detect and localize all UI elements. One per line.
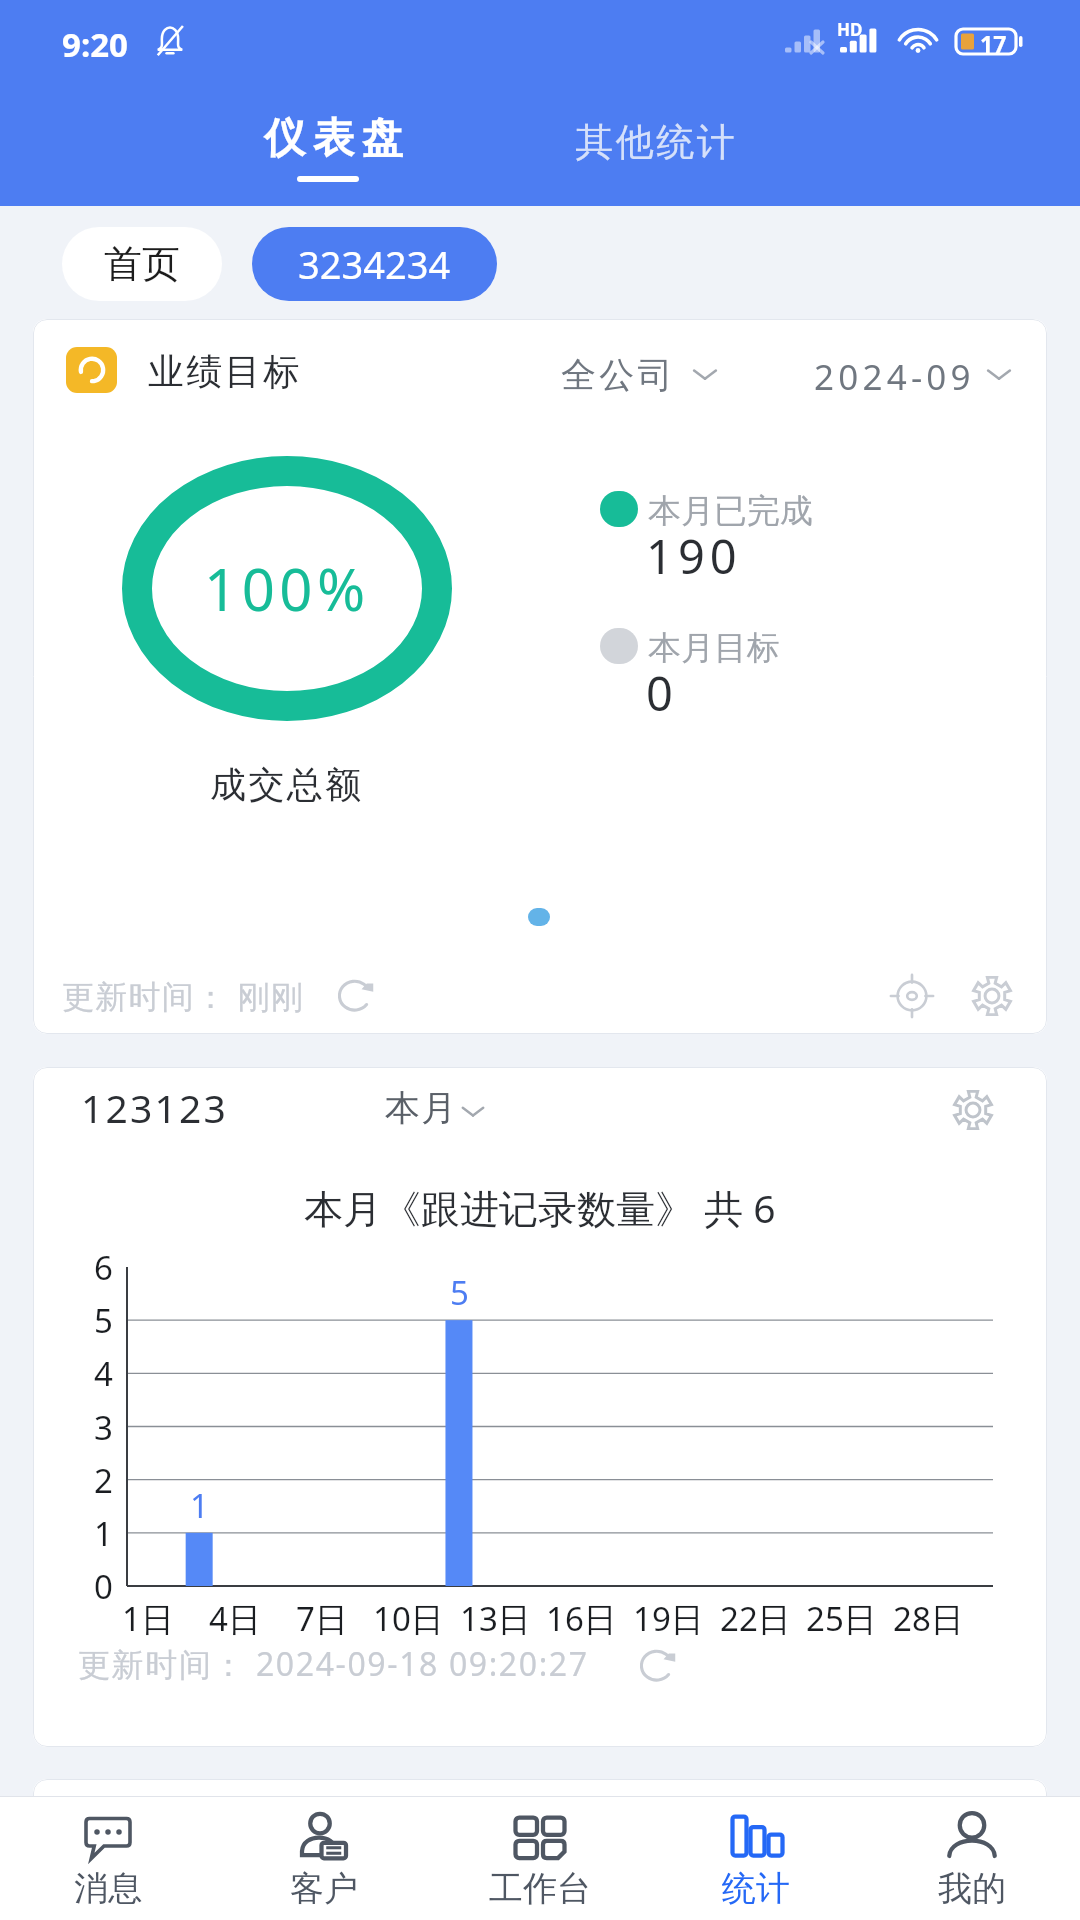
staticText: 5 xyxy=(94,1298,113,1343)
staticText: 客户 xyxy=(290,1867,358,1909)
staticText: 22日 xyxy=(720,1596,791,1641)
button[interactable]: Settings xyxy=(949,1086,997,1134)
button[interactable]: 工作台 xyxy=(432,1797,648,1920)
button[interactable]: 统计 xyxy=(648,1797,864,1920)
staticText: 123123 xyxy=(81,1081,229,1134)
staticText: 2 xyxy=(94,1458,113,1503)
staticText: 6 xyxy=(94,1245,113,1290)
staticText: 100% xyxy=(204,549,370,628)
staticText: 19日 xyxy=(633,1596,704,1641)
staticText: 本月《跟进记录数量》 共 6 xyxy=(304,1181,776,1234)
staticText: 17 xyxy=(980,28,1007,59)
staticText: 2024-09 xyxy=(814,353,975,401)
staticText: 0 xyxy=(646,661,673,725)
staticText: 1 xyxy=(190,1483,209,1527)
button[interactable]: Settings xyxy=(968,972,1016,1020)
button[interactable]: 消息 xyxy=(0,1797,216,1920)
staticText: 190 xyxy=(646,524,742,588)
staticText: 本月 xyxy=(384,1086,457,1130)
staticText: 更新时间： 2024-09-18 09:20:27 xyxy=(78,1642,589,1686)
staticText: 工作台 xyxy=(489,1867,591,1909)
staticText: 首页 xyxy=(104,240,180,288)
staticText: 更新时间： 刚刚 xyxy=(62,974,304,1018)
staticText: 本月已完成 xyxy=(648,490,813,532)
staticText: 全公司 xyxy=(561,353,676,397)
staticText: 成交总额 xyxy=(210,762,364,807)
button[interactable]: Notifications silenced xyxy=(153,24,187,58)
staticText: 13日 xyxy=(460,1596,531,1641)
staticText: 仪表盘 xyxy=(260,113,407,165)
staticText: 25日 xyxy=(806,1596,877,1641)
button[interactable]: Refresh xyxy=(635,1640,681,1686)
staticText: 5 xyxy=(450,1270,469,1314)
staticText: 3 xyxy=(94,1405,113,1450)
staticText: 1 xyxy=(94,1511,113,1556)
staticText: 0 xyxy=(94,1564,113,1609)
staticText: 本月目标 xyxy=(648,627,780,669)
staticText: 16日 xyxy=(546,1596,617,1641)
staticText: 1日 xyxy=(122,1596,174,1641)
button[interactable]: Target xyxy=(888,972,936,1020)
button[interactable]: 首页 xyxy=(62,227,222,301)
staticText: 3234234 xyxy=(298,238,451,290)
staticText: 业绩目标 xyxy=(148,349,302,394)
staticText: 4日 xyxy=(209,1596,261,1641)
staticText: HD xyxy=(837,18,863,41)
button[interactable]: 3234234 xyxy=(252,227,497,301)
staticText: 统计 xyxy=(722,1867,790,1909)
staticText: 7日 xyxy=(296,1596,348,1641)
staticText: 4 xyxy=(94,1351,113,1396)
staticText: 28日 xyxy=(893,1596,964,1641)
staticText: 9:20 xyxy=(62,22,128,67)
staticText: 其他统计 xyxy=(574,118,736,166)
staticText: 消息 xyxy=(74,1867,142,1909)
button[interactable]: 我的 xyxy=(864,1797,1080,1920)
staticText: 10日 xyxy=(373,1596,444,1641)
staticText: 我的 xyxy=(938,1867,1006,1909)
button[interactable]: Refresh xyxy=(333,970,379,1016)
button[interactable]: 客户 xyxy=(216,1797,432,1920)
